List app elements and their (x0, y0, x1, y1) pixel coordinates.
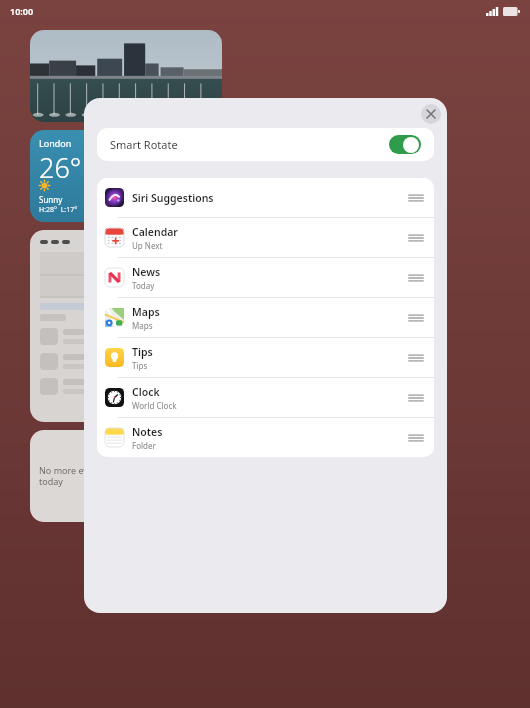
other: Reorder Tips (409, 353, 423, 363)
other: Reorder Maps (409, 313, 423, 323)
staticText: No more events today (39, 464, 107, 488)
button[interactable]: Close (421, 104, 441, 124)
staticText: Calendar (132, 225, 178, 239)
staticText: Smart Rotate (110, 137, 178, 152)
staticText: Clock (132, 385, 160, 399)
staticText: Notes (132, 425, 163, 439)
staticText: 10:00 (10, 5, 34, 17)
button[interactable]: List widget (30, 230, 122, 422)
button[interactable]: Tips (97, 338, 434, 377)
staticText: Sunny (39, 194, 63, 205)
staticText: Up Next (132, 240, 163, 251)
button[interactable]: Smart Rotate (97, 128, 434, 161)
staticText: 26° (39, 149, 82, 186)
button[interactable]: London (30, 130, 122, 222)
staticText: Maps (132, 320, 153, 331)
staticText: News (132, 265, 161, 279)
button[interactable]: News (97, 258, 434, 297)
button[interactable]: Photo widget (30, 30, 222, 122)
other: Reorder Clock (409, 393, 423, 403)
other: Reorder News (409, 273, 423, 283)
button[interactable]: Siri Suggestions (97, 178, 434, 217)
staticText: Tips (132, 360, 148, 371)
staticText: Tips (132, 345, 153, 359)
button[interactable]: No more events today (30, 430, 122, 522)
staticText: World Clock (132, 400, 177, 411)
button[interactable]: Clock (97, 378, 434, 417)
staticText: Maps (132, 305, 160, 319)
other: Reorder Calendar (409, 233, 423, 243)
other: Reorder Notes (409, 433, 423, 443)
staticText: Siri Suggestions (132, 191, 214, 205)
other: Reorder Siri Suggestions (409, 193, 423, 203)
staticText: Folder (132, 440, 156, 451)
button[interactable]: Maps (97, 298, 434, 337)
staticText: H:28° L:17° (39, 205, 78, 215)
button[interactable]: Notes (97, 418, 434, 457)
staticText: Today (132, 280, 155, 291)
staticText: London (39, 137, 72, 149)
button[interactable]: Calendar (97, 218, 434, 257)
